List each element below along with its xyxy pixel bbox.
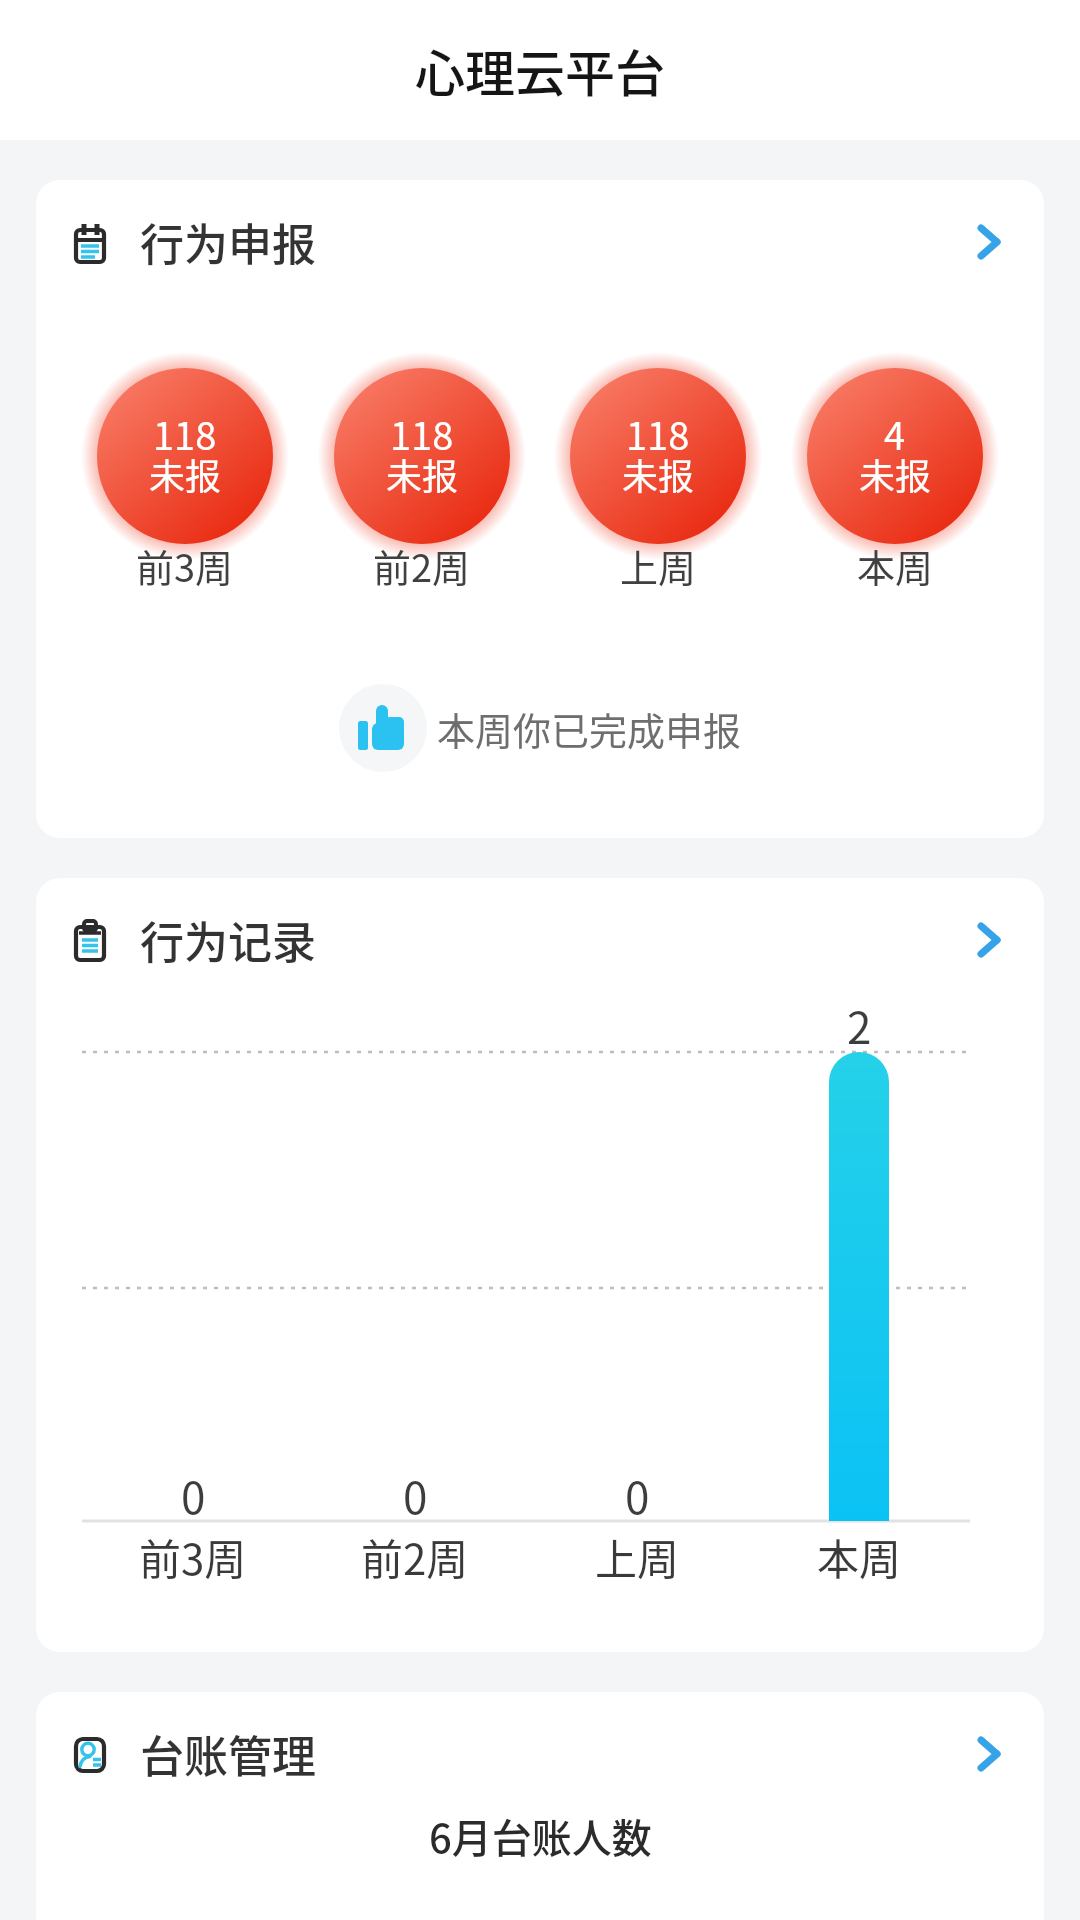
button[interactable]: 本周你已完成申报: [339, 684, 742, 772]
staticText: 118: [153, 406, 217, 461]
staticText: 前3周: [139, 1526, 247, 1587]
staticText: 未报: [859, 448, 932, 500]
staticText: 0: [625, 1463, 650, 1527]
staticText: 6月台账人数: [429, 1807, 652, 1865]
staticText: 行为记录: [140, 908, 316, 972]
staticText: 前2周: [361, 1526, 469, 1587]
button[interactable]: 台账管理: [36, 1692, 1044, 1920]
staticText: 0: [403, 1463, 428, 1527]
staticText: 本周: [857, 538, 934, 593]
staticText: 前2周: [373, 538, 471, 593]
staticText: 未报: [149, 448, 222, 500]
staticText: 上周: [595, 1526, 680, 1587]
staticText: 行为申报: [140, 210, 316, 274]
staticText: 上周: [620, 538, 697, 593]
staticText: 未报: [622, 448, 695, 500]
staticText: 118: [626, 406, 690, 461]
staticText: 0: [181, 1463, 206, 1527]
staticText: 2: [847, 993, 872, 1057]
staticText: 118: [390, 406, 454, 461]
staticText: 心理云平台: [415, 34, 665, 106]
staticText: 本周: [817, 1526, 902, 1587]
staticText: 前3周: [136, 538, 234, 593]
staticText: 4: [884, 406, 906, 461]
staticText: 未报: [386, 448, 459, 500]
staticText: 台账管理: [140, 1722, 316, 1786]
button[interactable]: 行为记录: [36, 878, 1044, 1652]
button[interactable]: 行为申报: [36, 180, 1044, 838]
staticText: 本周你已完成申报: [437, 701, 742, 756]
